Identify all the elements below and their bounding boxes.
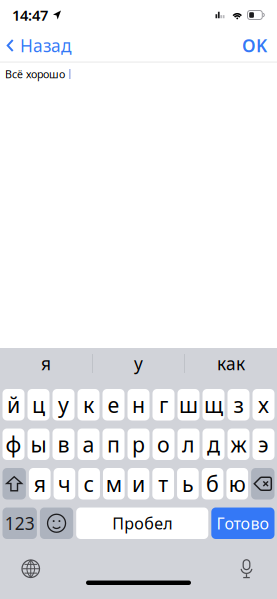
staticText: и [132, 470, 145, 498]
staticText: OK [242, 34, 267, 57]
button[interactable]: Emoji [40, 507, 73, 539]
staticText: ы [30, 430, 46, 458]
staticText: з [233, 391, 243, 419]
button[interactable]: п [102, 428, 124, 460]
button[interactable]: ч [54, 468, 75, 499]
staticText: Всё хорошо [5, 67, 65, 81]
button[interactable]: з [227, 389, 249, 420]
button[interactable]: ь [177, 468, 199, 499]
staticText: Пробел [112, 513, 172, 534]
staticText: Назад [20, 34, 72, 57]
button[interactable]: ж [227, 428, 249, 460]
button[interactable]: р [127, 428, 149, 460]
button[interactable]: Next keyboard [0, 539, 47, 580]
staticText: ш [179, 391, 198, 419]
staticText: у [58, 391, 69, 419]
staticText: я [41, 352, 51, 375]
button[interactable]: я [0, 348, 92, 379]
staticText: н [132, 391, 145, 419]
staticText: ю [229, 470, 246, 498]
button[interactable]: о [152, 428, 174, 460]
staticText: м [106, 470, 122, 498]
button[interactable]: й [2, 389, 24, 420]
staticText: с [84, 470, 95, 498]
button[interactable]: э [252, 428, 274, 460]
button[interactable]: щ [202, 389, 224, 420]
button[interactable]: к [77, 389, 99, 420]
button[interactable]: ш [177, 389, 199, 420]
staticText: ж [230, 430, 246, 458]
staticText: п [107, 430, 120, 458]
staticText: х [258, 391, 269, 419]
button[interactable]: 123 [2, 507, 37, 539]
button[interactable]: б [202, 468, 223, 499]
button[interactable]: д [202, 428, 224, 460]
button[interactable]: Готово [211, 507, 274, 539]
button[interactable]: в [52, 428, 74, 460]
button[interactable]: ы [27, 428, 49, 460]
staticText: д [207, 430, 220, 458]
button[interactable]: OK [232, 30, 277, 61]
button[interactable]: у [52, 389, 74, 420]
staticText: э [258, 430, 269, 458]
staticText: ь [182, 470, 194, 498]
button[interactable]: а [77, 428, 99, 460]
staticText: ц [32, 391, 45, 419]
staticText: й [7, 391, 20, 419]
staticText: Готово [216, 513, 269, 534]
staticText: г [159, 391, 168, 419]
button[interactable]: как [185, 348, 277, 379]
button[interactable]: у [92, 348, 184, 379]
button[interactable]: г [152, 389, 174, 420]
button[interactable]: л [177, 428, 199, 460]
staticText: я [34, 470, 46, 498]
staticText: т [158, 470, 168, 498]
button[interactable]: Shift [2, 468, 26, 499]
staticText: щ [204, 391, 223, 419]
staticText: 14:47 [12, 5, 48, 25]
staticText: б [206, 470, 219, 498]
button[interactable]: т [152, 468, 174, 499]
staticText: о [157, 430, 170, 458]
staticText: 123 [5, 512, 35, 535]
staticText: ф [5, 430, 21, 458]
staticText: р [132, 430, 145, 458]
staticText: л [182, 430, 195, 458]
button[interactable]: Пробел [76, 507, 208, 539]
button[interactable]: и [128, 468, 149, 499]
button[interactable]: ю [226, 468, 248, 499]
button[interactable]: н [127, 389, 149, 420]
button[interactable]: е [102, 389, 124, 420]
button[interactable]: я [29, 468, 51, 499]
staticText: к [83, 391, 94, 419]
button[interactable]: ф [2, 428, 24, 460]
staticText: у [134, 352, 143, 375]
button[interactable]: х [252, 389, 274, 420]
button[interactable]: Dictate [231, 539, 277, 581]
button[interactable]: Назад [0, 30, 78, 61]
staticText: а [82, 430, 94, 458]
staticText: как [217, 352, 245, 375]
button[interactable]: м [103, 468, 125, 499]
staticText: е [107, 391, 119, 419]
button[interactable]: ц [27, 389, 49, 420]
button[interactable]: Delete [251, 468, 274, 499]
staticText: ч [58, 470, 71, 498]
button[interactable]: с [78, 468, 100, 499]
staticText: в [57, 430, 69, 458]
